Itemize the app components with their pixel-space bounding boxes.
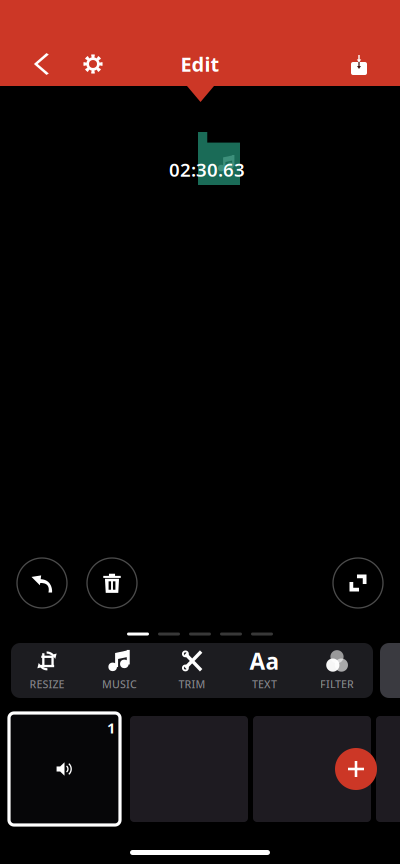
staticText: RESIZE bbox=[29, 677, 64, 691]
button[interactable]: Settings bbox=[71, 42, 115, 86]
button[interactable]: Clip 3 bbox=[253, 716, 371, 822]
button[interactable]: Aa bbox=[234, 643, 294, 697]
staticText: MUSIC bbox=[102, 677, 137, 691]
staticText: Edit bbox=[180, 51, 219, 77]
staticText: Aa bbox=[249, 646, 279, 676]
staticText: TRIM bbox=[178, 677, 205, 691]
staticText: FILTER bbox=[320, 677, 354, 691]
button[interactable]: Clip 4 bbox=[376, 716, 400, 822]
staticText: 02:30.63 bbox=[169, 157, 245, 182]
button[interactable]: Back bbox=[19, 42, 63, 86]
button[interactable]: Delete bbox=[86, 557, 138, 609]
button[interactable]: FILTER bbox=[307, 643, 367, 697]
button[interactable]: Undo bbox=[16, 557, 68, 609]
button[interactable]: Expand bbox=[332, 557, 384, 609]
button[interactable]: Save bbox=[337, 44, 381, 88]
staticText: TEXT bbox=[252, 677, 277, 691]
button[interactable]: Add clip bbox=[333, 746, 379, 792]
button[interactable]: 1 bbox=[9, 713, 120, 825]
staticText: 1 bbox=[107, 718, 115, 737]
button[interactable]: MUSIC bbox=[89, 643, 149, 697]
button[interactable]: TRIM bbox=[162, 643, 222, 697]
button[interactable]: RESIZE bbox=[17, 643, 77, 697]
